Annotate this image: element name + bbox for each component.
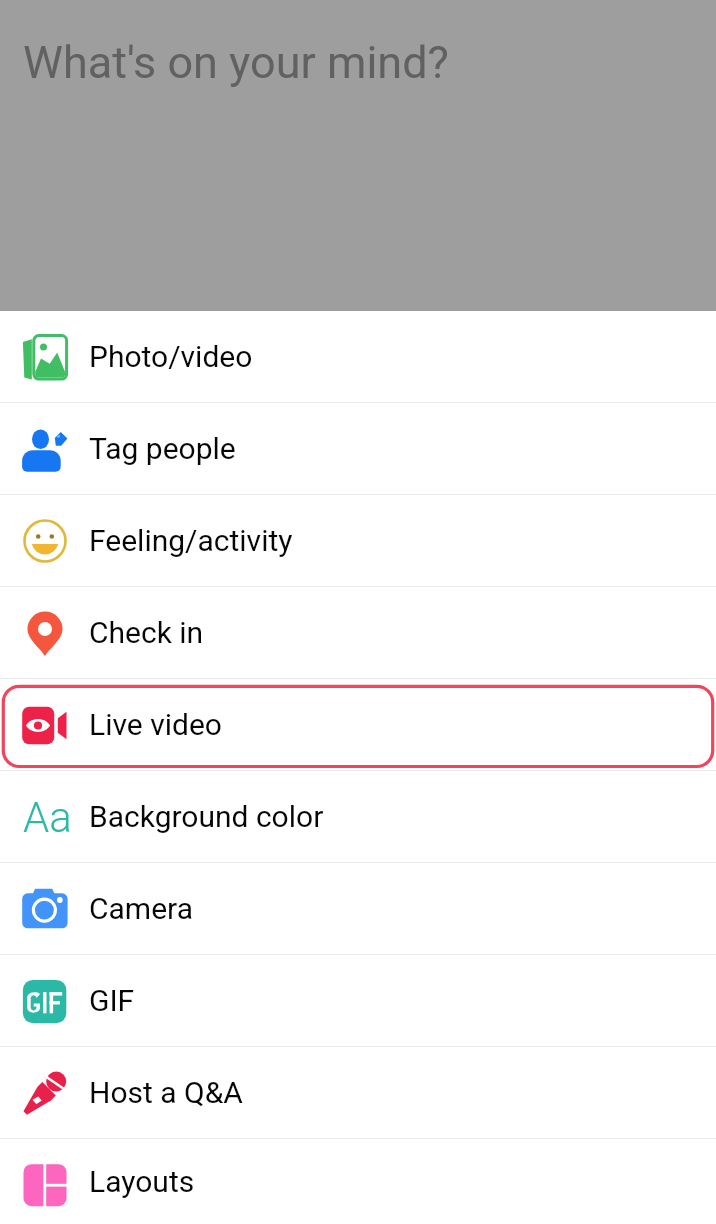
button[interactable]: Feeling/activity	[0, 495, 716, 586]
staticText: Feeling/activity	[89, 523, 293, 558]
button[interactable]: Photo/video	[0, 311, 716, 402]
staticText: Check in	[89, 615, 204, 650]
staticText: Aa	[23, 793, 93, 839]
staticText: Host a Q&A	[89, 1075, 243, 1110]
button[interactable]: Host a Q&A	[0, 1047, 716, 1138]
button[interactable]: Aa	[0, 771, 716, 862]
staticText: Background color	[89, 799, 324, 834]
button[interactable]: What's on your mind?	[0, 0, 716, 311]
staticText: GIF	[89, 983, 135, 1018]
button[interactable]: Tag people	[0, 403, 716, 494]
button[interactable]: Live video	[0, 679, 716, 770]
button[interactable]: Layouts	[0, 1139, 716, 1224]
staticText: Camera	[89, 891, 193, 926]
button[interactable]: Camera	[0, 863, 716, 954]
staticText: Live video	[89, 707, 222, 742]
staticText: Tag people	[89, 431, 236, 466]
staticText: Photo/video	[89, 339, 253, 374]
staticText: What's on your mind?	[23, 36, 449, 89]
button[interactable]: Check in	[0, 587, 716, 678]
button[interactable]: GIF	[0, 955, 716, 1046]
staticText: Layouts	[89, 1164, 195, 1199]
